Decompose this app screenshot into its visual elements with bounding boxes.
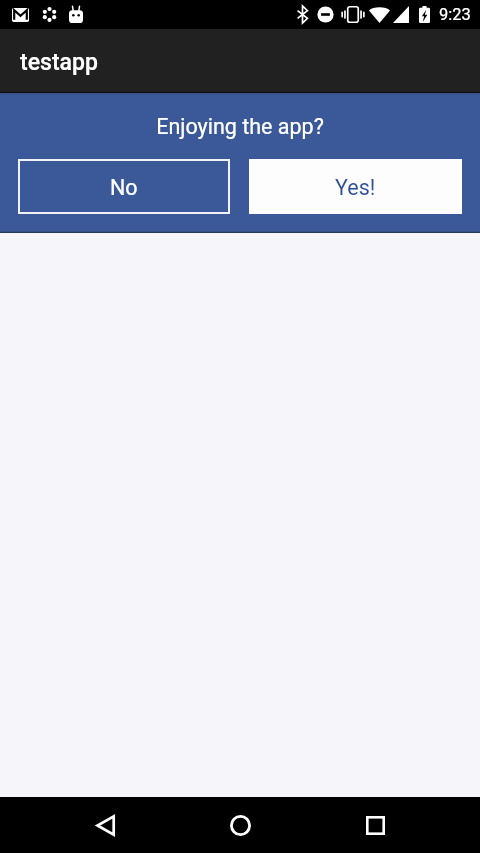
button[interactable]: Recent apps <box>337 797 414 853</box>
button[interactable]: Back <box>67 797 144 853</box>
staticText: No <box>110 175 138 200</box>
button[interactable]: Home <box>202 797 279 853</box>
button[interactable]: No <box>18 159 230 214</box>
staticText: testapp <box>20 49 98 76</box>
staticText: Enjoying the app? <box>156 114 324 139</box>
staticText: 9:23 <box>439 5 471 24</box>
button[interactable]: Yes! <box>249 159 462 214</box>
staticText: Yes! <box>335 175 376 200</box>
